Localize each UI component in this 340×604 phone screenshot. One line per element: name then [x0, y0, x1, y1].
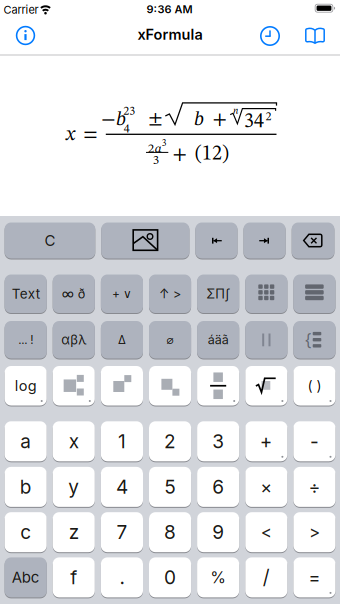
button[interactable]: Abc — [5, 557, 47, 597]
staticText: + — [172, 145, 186, 165]
button[interactable]: Subscript — [149, 366, 191, 405]
staticText: Δ — [118, 333, 126, 347]
staticText: 0 — [164, 566, 176, 589]
button[interactable]: About — [14, 24, 36, 46]
staticText: αβλ — [61, 332, 86, 348]
button[interactable]: Matrix — [245, 274, 287, 313]
button[interactable]: y — [53, 467, 95, 507]
staticText: (12) — [195, 144, 229, 164]
button[interactable]: Delete — [292, 222, 334, 258]
staticText: c — [20, 521, 31, 544]
staticText: - — [310, 430, 319, 453]
button[interactable]: Move cursor right — [243, 222, 286, 258]
staticText: ⌀ — [167, 333, 174, 347]
button[interactable]: 7 — [101, 512, 143, 552]
staticText: log — [15, 377, 37, 394]
button[interactable]: 2 — [149, 421, 191, 461]
button[interactable]: Square root — [245, 366, 287, 405]
staticText: b — [20, 475, 32, 498]
button[interactable]: > — [293, 512, 335, 552]
button[interactable]: ΣΠ∫ — [197, 274, 239, 313]
button[interactable]: Cases — [293, 321, 335, 358]
staticText: ↑ > — [159, 286, 181, 301]
staticText: − — [101, 110, 115, 130]
button[interactable]: 4 — [101, 467, 143, 507]
button[interactable]: áäã — [197, 321, 239, 358]
staticText: z — [69, 521, 79, 544]
staticText: 2 — [266, 111, 272, 123]
button[interactable]: 6 — [197, 467, 239, 507]
staticText: b — [116, 110, 126, 130]
button[interactable]: / — [245, 557, 287, 597]
button[interactable]: z — [53, 512, 95, 552]
button[interactable]: Fraction — [197, 366, 239, 405]
button[interactable]: ⌀ — [149, 321, 191, 358]
button[interactable]: % — [197, 557, 239, 597]
button[interactable]: ∞ ð — [53, 274, 95, 313]
button[interactable]: ... ! — [5, 321, 47, 358]
staticText: f — [70, 566, 77, 589]
button[interactable]: 8 — [149, 512, 191, 552]
staticText: = — [308, 566, 320, 588]
staticText: n — [233, 106, 238, 116]
staticText: C — [44, 231, 55, 249]
staticText: 6 — [212, 475, 224, 498]
button[interactable]: 9 — [197, 512, 239, 552]
button[interactable]: 1 — [101, 421, 143, 461]
button[interactable]: ( ) — [293, 366, 335, 405]
staticText: 1 — [118, 430, 126, 453]
button[interactable]: - — [293, 421, 335, 461]
staticText: + — [212, 110, 226, 130]
button[interactable]: + ∨ — [101, 274, 143, 313]
staticText: Abc — [12, 568, 40, 586]
button[interactable]: History — [259, 25, 281, 47]
button[interactable]: ÷ — [293, 467, 335, 507]
staticText: Carrier — [3, 3, 38, 16]
staticText: / — [263, 566, 270, 589]
button[interactable]: Library — [305, 27, 325, 45]
button[interactable]: + — [245, 421, 287, 461]
staticText: { — [304, 329, 311, 350]
button[interactable]: . — [101, 557, 143, 597]
staticText: ΣΠ∫ — [206, 286, 230, 302]
button[interactable]: a — [5, 421, 47, 461]
button[interactable]: 5 — [149, 467, 191, 507]
staticText: 4 — [116, 475, 128, 498]
staticText: a — [20, 430, 31, 453]
staticText: ( ) — [307, 377, 321, 394]
staticText: > — [309, 522, 320, 542]
button[interactable]: Text — [5, 274, 47, 313]
staticText: % — [210, 568, 226, 587]
staticText: x — [66, 125, 75, 145]
button[interactable]: 3 — [197, 421, 239, 461]
staticText: ∞ ð — [62, 286, 86, 302]
button[interactable]: Absolute value — [245, 321, 287, 358]
button[interactable]: C — [5, 222, 95, 258]
button[interactable]: < — [245, 512, 287, 552]
staticText: áäã — [208, 332, 229, 347]
button[interactable]: Super and subscript — [53, 366, 95, 405]
button[interactable]: αβλ — [53, 321, 95, 358]
staticText: 2 — [148, 142, 154, 155]
button[interactable]: List — [293, 274, 335, 313]
staticText: a — [155, 142, 162, 155]
button[interactable]: Δ — [101, 321, 143, 358]
staticText: 7 — [116, 521, 127, 544]
button[interactable]: × — [245, 467, 287, 507]
button[interactable]: f — [53, 557, 95, 597]
button[interactable]: 0 — [149, 557, 191, 597]
button[interactable]: log — [5, 366, 47, 405]
staticText: = — [83, 124, 97, 144]
staticText: < — [261, 522, 272, 542]
button[interactable]: x — [53, 421, 95, 461]
button[interactable]: = — [293, 557, 335, 597]
button[interactable]: ↑ > — [149, 274, 191, 313]
button[interactable]: c — [5, 512, 47, 552]
button[interactable]: Move cursor left — [195, 222, 237, 258]
staticText: b — [194, 110, 204, 130]
button[interactable]: Render image — [101, 222, 189, 258]
staticText: 5 — [165, 475, 176, 498]
staticText: 23 — [123, 106, 135, 118]
button[interactable]: b — [5, 467, 47, 507]
button[interactable]: Superscript — [101, 366, 143, 405]
